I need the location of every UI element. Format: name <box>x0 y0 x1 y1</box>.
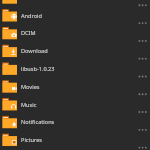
button[interactable]: More options <box>132 131 150 148</box>
staticText: libusb-1.0.23 <box>21 65 132 73</box>
button[interactable]: Alarms <box>0 0 150 6</box>
staticText: Download <box>21 47 132 55</box>
button[interactable]: Android <box>0 7 150 24</box>
button[interactable]: More options <box>132 78 150 95</box>
button[interactable]: libusb-1.0.23 <box>0 60 150 77</box>
staticText: Pictures <box>21 136 132 144</box>
button[interactable]: More options <box>132 24 150 41</box>
button[interactable]: More options <box>132 0 150 6</box>
staticText: Music <box>21 101 132 109</box>
staticText: Notifications <box>21 118 132 126</box>
button[interactable]: DCIM <box>0 24 150 41</box>
button[interactable]: Download <box>0 42 150 59</box>
button[interactable]: Movies <box>0 78 150 95</box>
button[interactable]: More options <box>132 96 150 113</box>
button[interactable]: Pictures <box>0 131 150 148</box>
button[interactable]: Music <box>0 96 150 113</box>
staticText: DCIM <box>21 29 132 37</box>
button[interactable]: More options <box>132 42 150 59</box>
staticText: Android <box>21 12 132 20</box>
staticText: Movies <box>21 83 132 91</box>
button[interactable]: Notifications <box>0 113 150 130</box>
button[interactable]: More options <box>132 113 150 130</box>
button[interactable]: More options <box>132 60 150 77</box>
button[interactable]: More options <box>132 7 150 24</box>
